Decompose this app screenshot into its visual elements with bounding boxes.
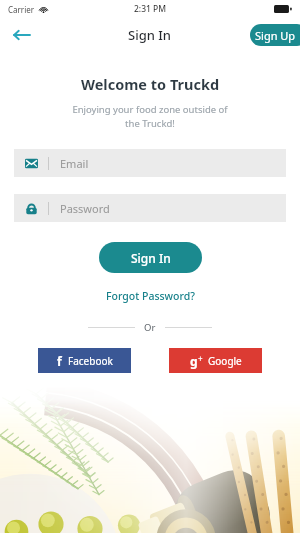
staticText: 2:31 PM (134, 3, 167, 15)
staticText: Email (60, 156, 89, 171)
button[interactable]: f (38, 348, 131, 373)
staticText: + (198, 353, 203, 364)
staticText: Carrier (8, 4, 35, 15)
staticText: Sign In (131, 250, 171, 266)
staticText: Welcome to Truckd (0, 74, 300, 94)
staticText: Enjoying your food zone outside of the T… (36, 103, 264, 130)
staticText: Sign Up (255, 28, 296, 43)
staticText: f (57, 353, 62, 369)
button[interactable]: Back (7, 21, 35, 49)
button[interactable]: Sign Up (250, 24, 300, 46)
staticText: Forgot Password? (106, 289, 195, 303)
staticText: Password (60, 201, 110, 216)
button[interactable]: Forgot Password? (98, 286, 203, 306)
button[interactable]: Email (14, 149, 286, 177)
button[interactable]: g (169, 348, 262, 373)
button[interactable]: Password (14, 194, 286, 222)
button[interactable]: Sign In (99, 242, 202, 273)
staticText: Or (144, 321, 156, 334)
staticText: Sign In (128, 26, 172, 44)
staticText: g (190, 353, 198, 369)
staticText: Facebook (68, 354, 113, 368)
staticText: Google (208, 354, 242, 368)
